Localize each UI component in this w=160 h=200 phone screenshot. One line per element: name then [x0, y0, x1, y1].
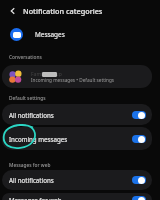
staticText: All notifications	[9, 176, 132, 184]
staticText: Notification categories	[23, 6, 103, 16]
staticText: Messages for web	[9, 196, 132, 200]
staticText: All notifications	[9, 111, 132, 119]
staticText: Messages for web	[9, 162, 51, 169]
button[interactable]: Family group	[2, 65, 152, 88]
button[interactable]: All notifications	[2, 104, 152, 125]
button[interactable]: Incoming messages	[2, 127, 152, 150]
staticText: Incoming messages • Default settings	[31, 77, 115, 83]
button[interactable]: Messages for web	[2, 193, 152, 200]
button[interactable]: All notifications	[2, 170, 152, 190]
staticText: Conversations	[9, 54, 42, 61]
staticText: Default settings	[9, 95, 46, 102]
staticText: Family group	[31, 71, 62, 78]
staticText: Messages	[35, 30, 65, 39]
button[interactable]: Messages	[10, 27, 160, 42]
staticText: Incoming messages	[9, 135, 132, 143]
button[interactable]: Back	[6, 4, 20, 18]
